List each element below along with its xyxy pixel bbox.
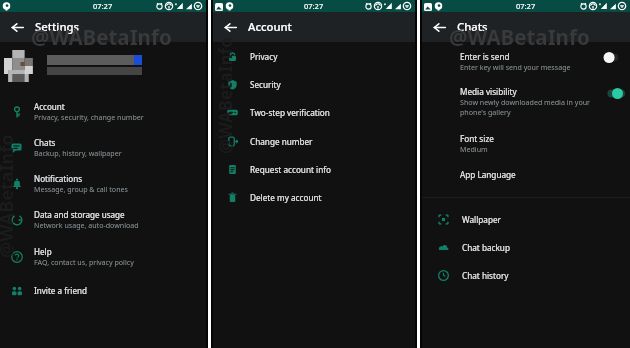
staticText: Settings (35, 19, 79, 34)
button[interactable]: Wallpaper (422, 205, 630, 233)
button[interactable]: Invite a friend (0, 275, 206, 305)
staticText: Help (34, 246, 52, 257)
button[interactable]: Help (0, 238, 206, 274)
staticText: Backup, history, wallpaper (34, 148, 122, 158)
staticText: Network usage, auto-download (34, 220, 139, 230)
button[interactable]: Data and storage usage (0, 201, 206, 238)
staticText: Notifications (34, 173, 83, 184)
button[interactable]: Media visibility (422, 79, 630, 123)
button[interactable]: Account (0, 93, 206, 129)
staticText: Media visibility (460, 86, 517, 97)
button[interactable]: Request account info (213, 155, 415, 183)
staticText: Font size (460, 133, 494, 144)
staticText: Privacy, security, change number (34, 112, 144, 122)
button[interactable]: App Language (422, 159, 630, 189)
staticText: Two-step verification (250, 107, 330, 118)
staticText: phone's gallery (460, 107, 511, 117)
staticText: @WABetaInfo (214, 37, 237, 154)
button[interactable]: Chat history (422, 261, 630, 290)
staticText: 07:27 (516, 1, 536, 11)
button[interactable]: Delete my account (213, 183, 415, 212)
button[interactable]: Back (428, 16, 450, 38)
staticText: Security (250, 79, 281, 90)
staticText: Wallpaper (462, 214, 501, 225)
button[interactable] (0, 50, 206, 93)
staticText: Chats (457, 19, 488, 34)
button[interactable]: Back (6, 16, 28, 38)
staticText: Delete my account (250, 192, 322, 203)
button[interactable]: Change number (213, 127, 415, 155)
staticText: 07:27 (304, 1, 324, 11)
button[interactable]: Notifications (0, 165, 206, 201)
staticText: Message, group & call tones (34, 184, 128, 194)
staticText: 07:27 (93, 1, 113, 11)
staticText: FAQ, contact us, privacy policy (34, 257, 134, 267)
staticText: Chat backup (462, 242, 510, 253)
staticText: @WABetaInfo (449, 23, 590, 51)
button[interactable]: Enter is send (594, 51, 626, 64)
button[interactable]: Back (219, 16, 241, 38)
staticText: Show newly downloaded media in your (460, 97, 591, 107)
staticText: App Language (460, 169, 516, 180)
staticText: Request account info (250, 164, 331, 175)
button[interactable]: Security (213, 70, 415, 98)
button[interactable]: Chats (0, 129, 206, 165)
staticText: @WABetaInfo (31, 23, 172, 51)
staticText: Account (248, 19, 292, 34)
staticText: Privacy (250, 51, 278, 62)
staticText: Change number (250, 136, 313, 147)
button[interactable]: Privacy (213, 42, 415, 70)
staticText: Enter key will send your message (460, 62, 571, 72)
button[interactable]: Chat backup (422, 233, 630, 261)
staticText: Chats (34, 137, 56, 148)
button[interactable]: Font size (422, 123, 630, 159)
button[interactable]: Enter is send (422, 43, 630, 79)
button[interactable]: Two-step verification (213, 98, 415, 127)
staticText: Account (34, 101, 65, 112)
staticText: @WABetaInfo (0, 134, 19, 258)
staticText: Chat history (462, 270, 509, 281)
staticText: Invite a friend (34, 285, 87, 296)
staticText: Enter is send (460, 51, 510, 62)
button[interactable]: Media visibility (594, 87, 626, 100)
staticText: Medium (460, 144, 488, 154)
staticText: Data and storage usage (34, 209, 125, 220)
